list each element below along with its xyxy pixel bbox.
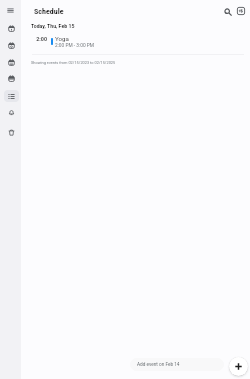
button[interactable]: Notifications <box>4 106 19 118</box>
staticText: Showing events from 02/15/2023 to 02/15/… <box>31 60 116 65</box>
button[interactable]: Schedule <box>4 90 19 102</box>
button[interactable]: Month view <box>4 56 19 68</box>
button[interactable]: Year view <box>4 72 19 84</box>
staticText: 2:00 <box>31 36 47 42</box>
button[interactable]: Search <box>222 6 234 18</box>
button[interactable]: Menu <box>3 4 18 16</box>
staticText: Today, Thu, Feb 15 <box>31 23 75 29</box>
button[interactable]: Add event on Feb 14 <box>130 358 224 371</box>
button[interactable]: Week view <box>4 39 19 51</box>
staticText: Yoga <box>55 35 69 42</box>
staticText: Schedule <box>34 7 64 16</box>
button[interactable]: 2:00 <box>0 33 250 49</box>
button[interactable]: Jump to today <box>235 5 247 17</box>
button[interactable]: Trash <box>4 126 19 138</box>
staticText: Add event on Feb 14 <box>137 362 180 368</box>
button[interactable]: Add event <box>229 357 248 376</box>
button[interactable]: Day view <box>4 22 19 34</box>
staticText: 2:00 PM - 3:00 PM <box>55 43 95 49</box>
